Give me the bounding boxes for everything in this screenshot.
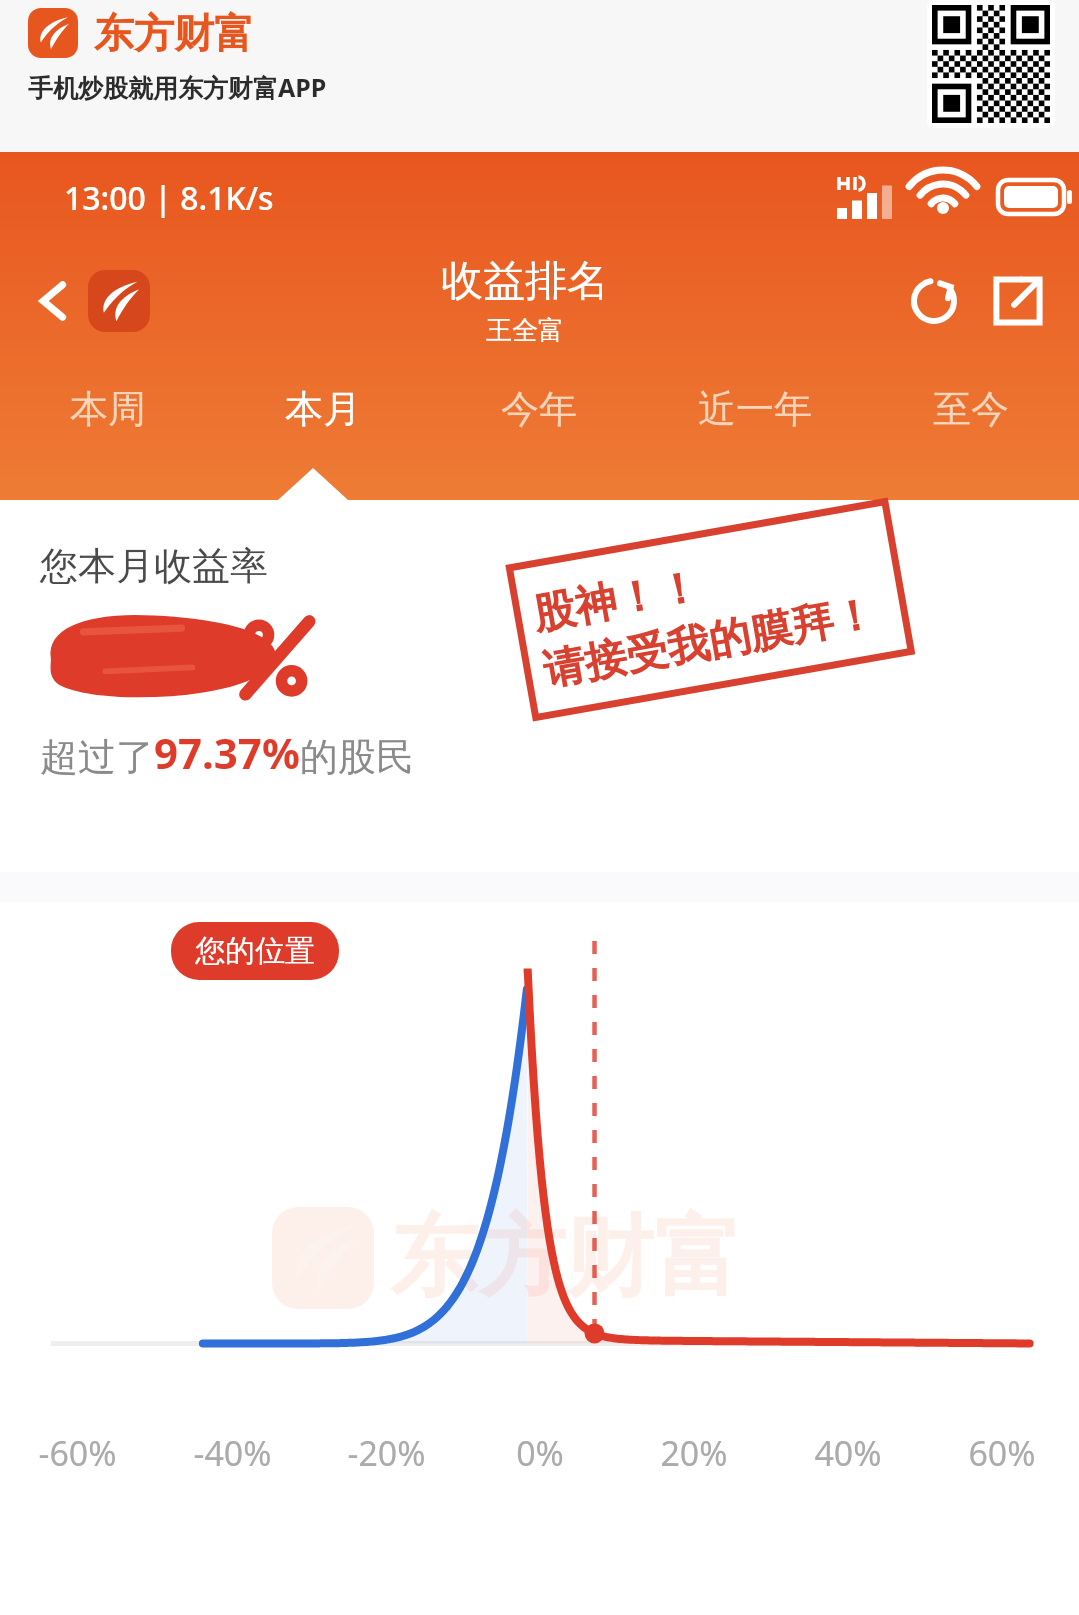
button[interactable]: 您的位置 — [171, 922, 339, 980]
button[interactable]: 今年 — [431, 354, 647, 464]
button[interactable]: Back — [26, 273, 82, 329]
button[interactable]: Refresh — [901, 268, 967, 334]
staticText: 本周 — [70, 385, 146, 433]
staticText: 97.37% — [154, 724, 300, 781]
staticText: -60% — [38, 1430, 117, 1476]
button[interactable]: 至今 — [863, 354, 1079, 464]
staticText: -40% — [193, 1430, 272, 1476]
staticText: 超过了 — [40, 733, 154, 781]
button[interactable]: Share — [985, 268, 1051, 334]
staticText: 20% — [660, 1430, 728, 1476]
staticText: 近一年 — [698, 385, 812, 433]
staticText: 东方财富 — [390, 1202, 742, 1313]
staticText: 60% — [968, 1430, 1036, 1476]
staticText: 股神！！ — [529, 560, 704, 642]
button[interactable]: 本周 — [0, 354, 215, 464]
staticText: 13:00 | 8.1K/s — [64, 176, 274, 220]
staticText: 收益排名 — [441, 255, 609, 308]
staticText: 今年 — [501, 385, 577, 433]
button[interactable]: 东方财富 — [28, 8, 327, 104]
button[interactable]: QR code — [932, 5, 1050, 123]
button[interactable]: 本月 — [215, 354, 431, 464]
staticText: 的股民 — [300, 733, 414, 781]
staticText: 请接受我的膜拜！ — [539, 587, 879, 698]
staticText: 0% — [516, 1430, 564, 1476]
staticText: 东方财富 — [94, 8, 254, 58]
staticText: 手机炒股就用东方财富APP — [28, 70, 327, 104]
staticText: -20% — [347, 1430, 426, 1476]
button[interactable]: 近一年 — [647, 354, 863, 464]
staticText: 至今 — [933, 385, 1009, 433]
staticText: 您本月收益率 — [40, 542, 268, 590]
staticText: 本月 — [285, 385, 361, 433]
staticText: 王全富 — [486, 314, 564, 347]
staticText: 40% — [814, 1430, 882, 1476]
staticText: 您的位置 — [195, 932, 315, 970]
button[interactable]: App home — [88, 270, 150, 332]
